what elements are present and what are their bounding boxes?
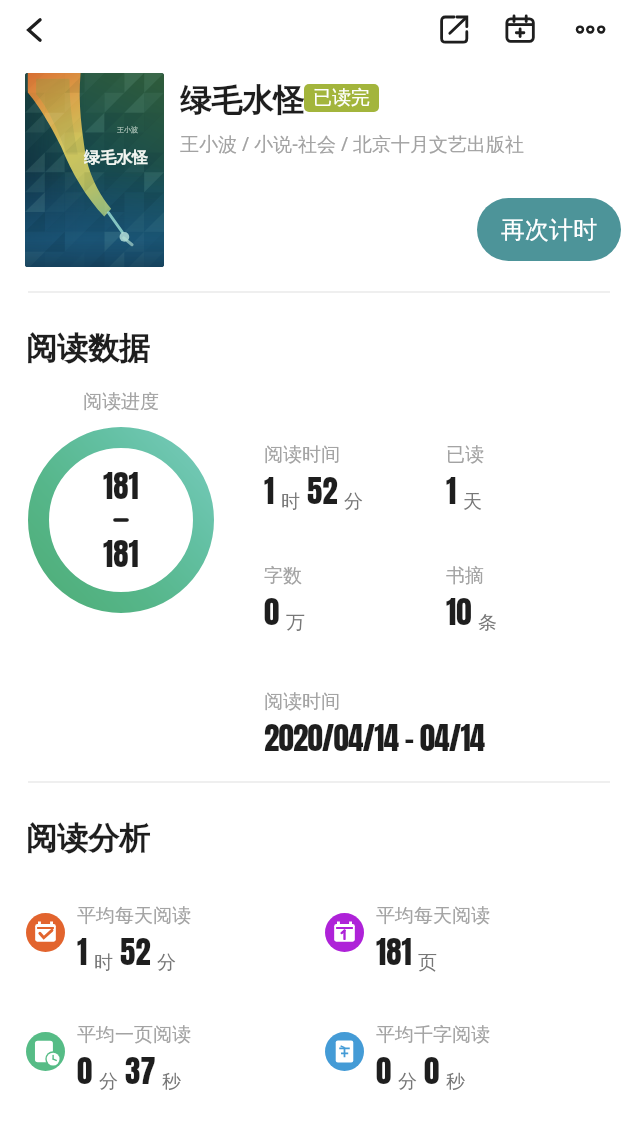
staticText: 阅读数据 <box>26 329 150 368</box>
staticText: 时 <box>281 490 300 514</box>
button[interactable]: Back <box>17 13 51 47</box>
staticText: 已读完 <box>313 86 370 110</box>
staticText: 阅读分析 <box>26 819 150 858</box>
button[interactable]: 平均千字阅读 <box>325 1023 490 1095</box>
staticText: 平均千字阅读 <box>376 1023 490 1047</box>
staticText: 王小波 / 小说-社会 / 北京十月文艺出版社 <box>180 131 525 157</box>
staticText: 页 <box>418 951 437 975</box>
staticText: 再次计时 <box>501 215 597 245</box>
staticText: 条 <box>478 611 497 635</box>
staticText: 天 <box>463 490 482 514</box>
staticText: 秒 <box>446 1070 465 1094</box>
staticText: 书摘 <box>446 564 484 588</box>
button[interactable]: 平均每天阅读 <box>26 904 191 976</box>
staticText: 平均每天阅读 <box>376 904 490 928</box>
staticText: 分 <box>99 1070 118 1094</box>
staticText: 1 <box>264 468 275 515</box>
staticText: 10 <box>446 589 472 636</box>
staticText: 1 <box>77 929 88 976</box>
staticText: 绿毛水怪 <box>84 148 148 168</box>
staticText: 阅读时间 <box>264 443 340 467</box>
staticText: 0 <box>424 1048 440 1095</box>
staticText: 2020/04/14 - 04/14 <box>264 715 485 762</box>
staticText: 52 <box>307 468 338 515</box>
staticText: 阅读时间 <box>264 690 340 714</box>
staticText: 0 <box>376 1048 392 1095</box>
staticText: 181 <box>103 531 139 578</box>
staticText: 绿毛水怪 <box>180 81 304 120</box>
staticText: 阅读进度 <box>83 390 159 414</box>
staticText: 181 <box>103 463 139 510</box>
staticText: 分 <box>398 1070 417 1094</box>
button[interactable]: More options <box>568 9 610 51</box>
button[interactable]: Add to calendar <box>501 9 543 51</box>
staticText: 时 <box>94 951 113 975</box>
staticText: 0 <box>77 1048 93 1095</box>
staticText: 52 <box>120 929 151 976</box>
staticText: 已读 <box>446 443 484 467</box>
staticText: 万 <box>286 611 305 635</box>
staticText: 181 <box>376 929 412 976</box>
staticText: 秒 <box>162 1070 181 1094</box>
staticText: 0 <box>264 589 280 636</box>
staticText: 1 <box>446 468 457 515</box>
button[interactable]: 再次计时 <box>477 198 621 261</box>
staticText: 字数 <box>264 564 302 588</box>
staticText: 平均一页阅读 <box>77 1023 191 1047</box>
staticText: 分 <box>344 490 363 514</box>
button[interactable]: 平均每天阅读 <box>325 904 490 976</box>
staticText: 平均每天阅读 <box>77 904 191 928</box>
button[interactable]: 平均一页阅读 <box>26 1023 191 1095</box>
staticText: 王小波 <box>117 125 138 134</box>
staticText: 分 <box>157 951 176 975</box>
staticText: 37 <box>125 1048 156 1095</box>
button[interactable]: Share <box>433 9 475 51</box>
